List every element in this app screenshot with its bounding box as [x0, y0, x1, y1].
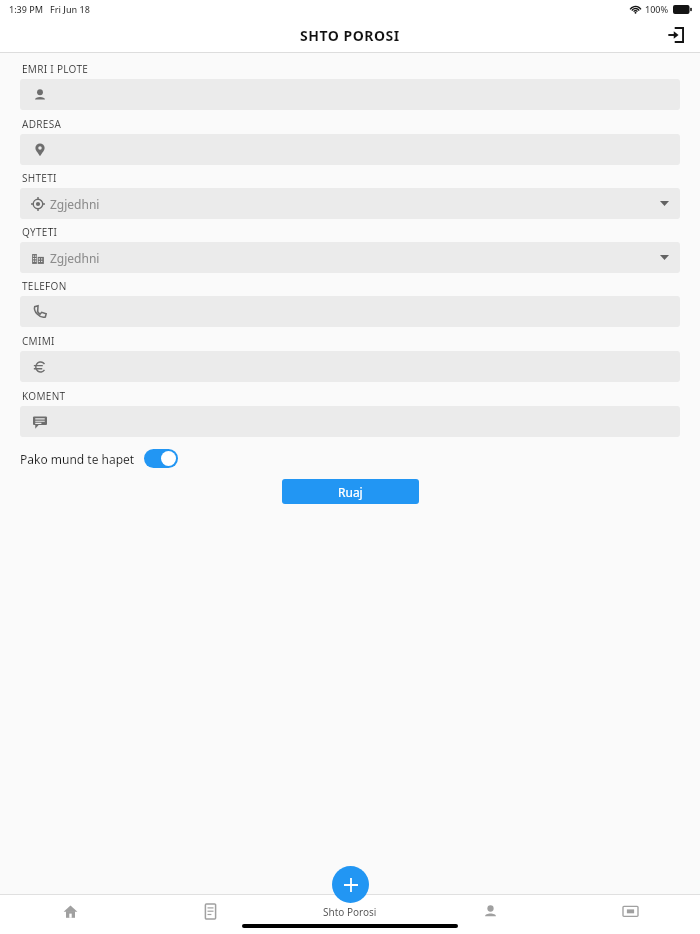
- button[interactable]: Ruaj: [282, 479, 419, 504]
- staticText: SHTETI: [22, 171, 57, 185]
- staticText: EMRI I PLOTE: [22, 62, 89, 76]
- button[interactable]: [20, 351, 680, 382]
- staticText: Zgjedhni: [50, 196, 100, 212]
- staticText: 100%: [645, 3, 669, 15]
- button[interactable]: [20, 134, 680, 165]
- button[interactable]: Orders: [140, 894, 280, 934]
- button[interactable]: [20, 79, 680, 110]
- button[interactable]: [20, 406, 680, 437]
- button[interactable]: Logout: [660, 19, 692, 51]
- button[interactable]: Pako mund te hapet: [20, 449, 178, 468]
- button[interactable]: Shto Porosi: [332, 866, 369, 903]
- button[interactable]: Zgjedhni: [20, 242, 680, 273]
- staticText: Fri Jun 18: [50, 3, 90, 15]
- staticText: KOMENT: [22, 389, 66, 403]
- staticText: ADRESA: [22, 117, 62, 131]
- staticText: CMIMI: [22, 334, 55, 348]
- staticText: Shto Porosi: [323, 905, 377, 919]
- staticText: Zgjedhni: [50, 250, 100, 266]
- button[interactable]: Reports: [560, 894, 700, 934]
- staticText: TELEFON: [22, 279, 67, 293]
- staticText: QYTETI: [22, 225, 58, 239]
- staticText: Pako mund te hapet: [20, 451, 135, 467]
- button[interactable]: [20, 296, 680, 327]
- staticText: Ruaj: [338, 484, 363, 500]
- button[interactable]: Zgjedhni: [20, 188, 680, 219]
- button[interactable]: Profile: [420, 894, 560, 934]
- staticText: 1:39 PM: [9, 3, 43, 15]
- staticText: SHTO POROSI: [300, 26, 400, 45]
- button[interactable]: Home: [0, 894, 140, 934]
